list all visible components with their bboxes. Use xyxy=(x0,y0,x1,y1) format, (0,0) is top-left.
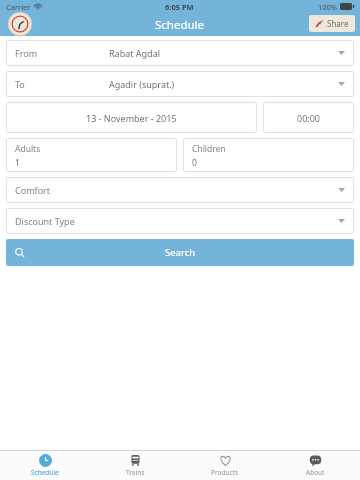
button[interactable]: Comfort xyxy=(6,177,354,203)
staticText: 100% xyxy=(318,2,338,12)
staticText: Children xyxy=(192,143,226,155)
staticText: From xyxy=(15,47,38,59)
staticText: Schedule xyxy=(31,468,59,477)
staticText: Search xyxy=(165,246,196,259)
staticText: 00:00 xyxy=(297,112,321,124)
staticText: 6:05 PM xyxy=(165,2,194,12)
staticText: Rabat Agdal xyxy=(109,47,161,59)
button[interactable]: Products xyxy=(180,451,270,480)
staticText: Share xyxy=(327,18,349,29)
staticText: 0 xyxy=(192,157,197,167)
button[interactable]: Trains xyxy=(90,451,180,480)
button[interactable]: Recent searches xyxy=(8,12,38,36)
button[interactable]: Discount Type xyxy=(6,208,354,234)
button[interactable]: From xyxy=(6,40,354,66)
button[interactable]: Children xyxy=(183,138,354,172)
staticText: About xyxy=(306,468,325,477)
button[interactable]: Adults xyxy=(6,138,177,172)
staticText: Adults xyxy=(15,143,41,155)
button[interactable]: To xyxy=(6,71,354,97)
button[interactable]: Search xyxy=(6,239,354,266)
staticText: Products xyxy=(211,468,239,477)
button[interactable]: Share xyxy=(309,15,355,32)
staticText: Trains xyxy=(126,468,145,477)
button[interactable]: About xyxy=(270,451,360,480)
staticText: Comfort xyxy=(15,184,51,196)
staticText: To xyxy=(15,78,25,90)
staticText: Schedule xyxy=(155,17,205,33)
staticText: 13 - November - 2015 xyxy=(86,112,177,124)
button[interactable]: 13 - November - 2015 xyxy=(6,102,257,133)
button[interactable]: 00:00 xyxy=(263,102,354,133)
staticText: 1 xyxy=(15,157,20,167)
staticText: Agadir (suprat.) xyxy=(109,78,175,90)
button[interactable]: Schedule xyxy=(0,451,90,480)
staticText: Carrier xyxy=(6,2,31,12)
staticText: Discount Type xyxy=(15,215,75,227)
